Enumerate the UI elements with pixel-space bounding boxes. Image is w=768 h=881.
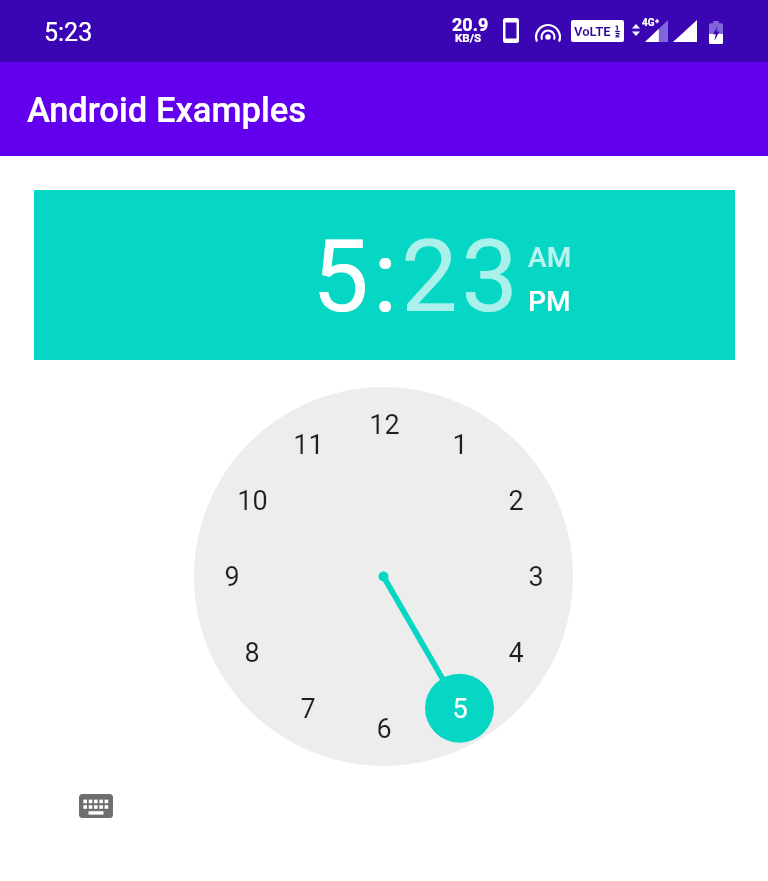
button[interactable]: 1 bbox=[194, 387, 573, 766]
staticText: 10 bbox=[237, 485, 268, 517]
staticText: 2 bbox=[508, 485, 524, 517]
button[interactable]: 10 bbox=[229, 478, 275, 524]
staticText: 4G bbox=[642, 17, 655, 29]
button[interactable]: 1 bbox=[437, 422, 483, 468]
staticText: PM bbox=[528, 285, 571, 318]
button[interactable]: PM bbox=[522, 279, 574, 315]
staticText: : bbox=[373, 217, 401, 335]
button[interactable]: 2 bbox=[493, 478, 539, 524]
button[interactable]: 23 bbox=[401, 217, 522, 335]
button[interactable]: AM bbox=[522, 235, 574, 271]
button[interactable]: 7 bbox=[285, 686, 331, 732]
button[interactable]: 5 bbox=[312, 217, 373, 335]
staticText: 23 bbox=[401, 217, 522, 335]
staticText: 9 bbox=[224, 561, 240, 593]
staticText: 8 bbox=[244, 637, 260, 669]
staticText: 20.9 bbox=[452, 14, 489, 35]
staticText: KB/S bbox=[455, 31, 482, 44]
staticText: VoLTE bbox=[574, 24, 611, 39]
button[interactable]: 12 bbox=[361, 402, 407, 448]
staticText: 5 bbox=[312, 217, 373, 335]
staticText: 1 bbox=[452, 429, 468, 461]
staticText: AM bbox=[528, 241, 572, 274]
button[interactable]: Switch to keyboard input bbox=[79, 794, 113, 818]
staticText: 5:23 bbox=[44, 18, 93, 47]
button[interactable]: 8 bbox=[229, 630, 275, 676]
staticText: Android Examples bbox=[27, 90, 307, 130]
staticText: 4 bbox=[508, 637, 524, 669]
button[interactable]: 9 bbox=[209, 554, 255, 600]
button[interactable]: 6 bbox=[361, 706, 407, 752]
staticText: 12 bbox=[369, 409, 400, 441]
button[interactable]: 3 bbox=[513, 554, 559, 600]
staticText: 11 bbox=[293, 429, 324, 461]
button[interactable]: 5 bbox=[437, 686, 483, 732]
staticText: 6 bbox=[376, 713, 392, 745]
staticText: 5 bbox=[452, 693, 468, 725]
staticText: 3 bbox=[528, 561, 544, 593]
button[interactable]: 4 bbox=[493, 630, 539, 676]
staticText: 7 bbox=[300, 693, 316, 725]
button[interactable]: 11 bbox=[285, 422, 331, 468]
